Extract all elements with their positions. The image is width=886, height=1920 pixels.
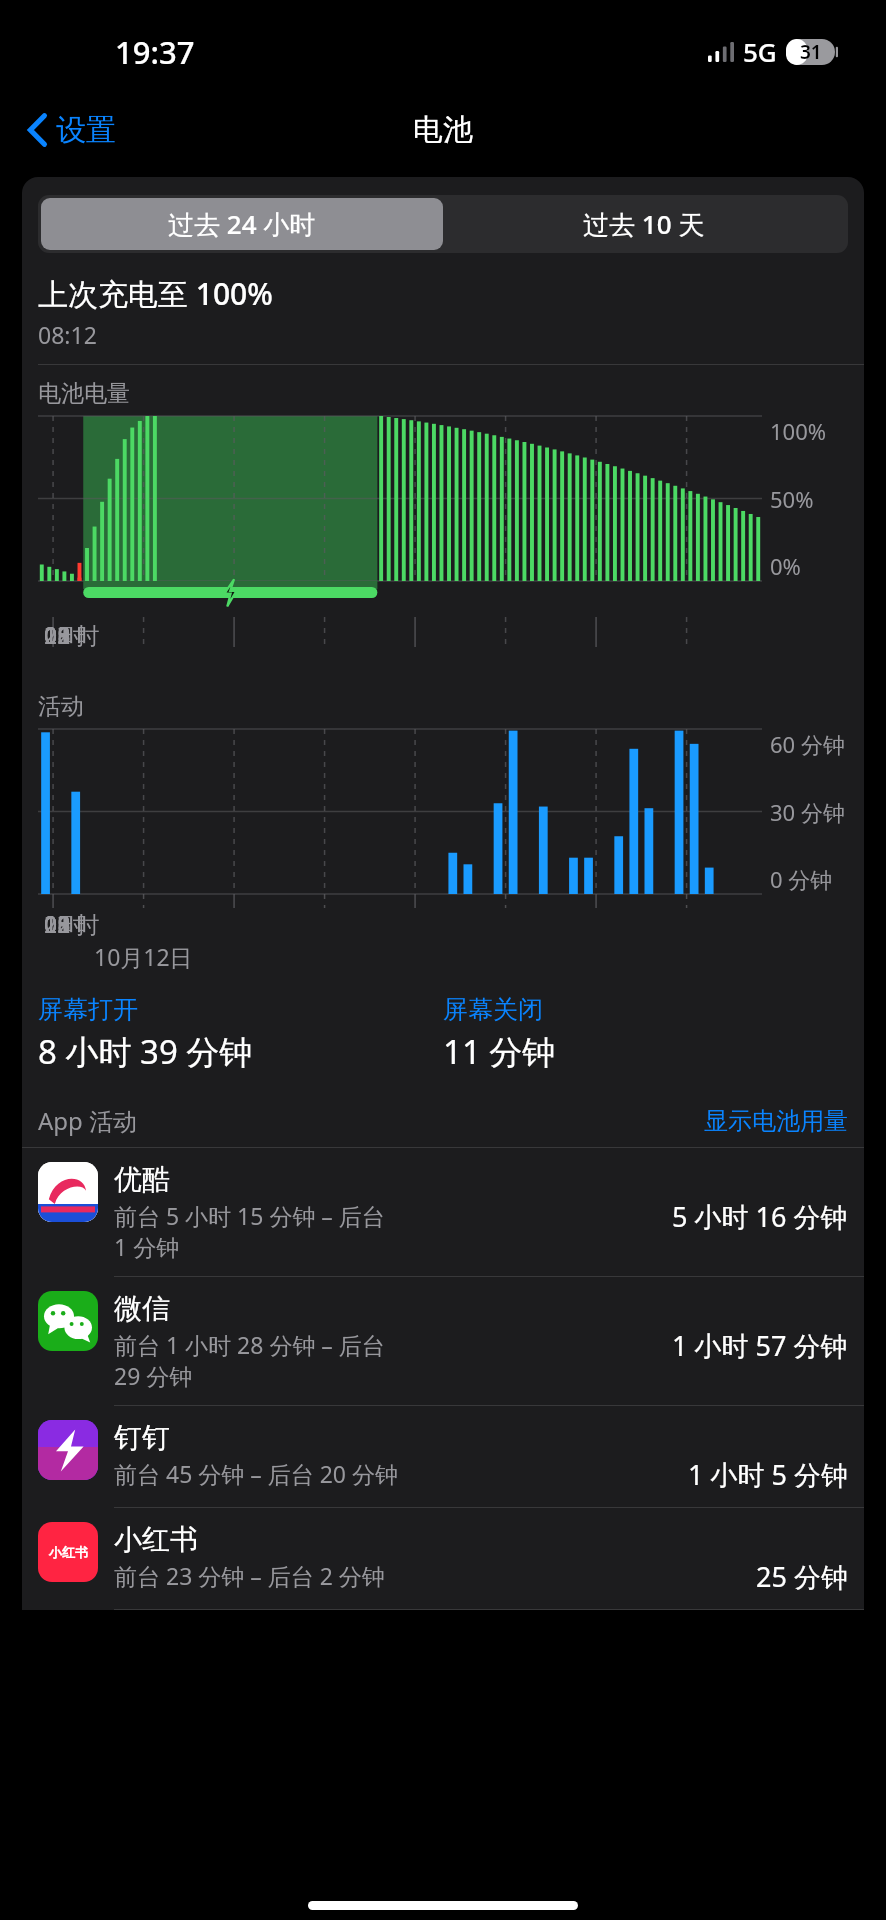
staticText: 06: [44, 908, 71, 939]
staticText: 前台 45 分钟 – 后台 20 分钟: [114, 1458, 399, 1489]
staticText: 电池电量: [38, 379, 130, 408]
staticText: 03: [44, 908, 71, 939]
staticText: 上次充电至 100%: [38, 273, 273, 314]
staticText: 09: [44, 619, 71, 650]
staticText: 100%: [770, 416, 827, 446]
staticText: 30 分钟: [770, 797, 845, 827]
staticText: 1 小时 57 分钟: [672, 1327, 848, 1364]
staticText: 15: [44, 908, 71, 939]
staticText: 前台 1 小时 28 分钟 – 后台 29 分钟: [114, 1329, 385, 1391]
staticText: 21: [44, 908, 71, 939]
staticText: 小红书: [49, 1544, 88, 1560]
staticText: 0 时: [44, 908, 87, 939]
button[interactable]: 过去 10 天: [443, 198, 845, 250]
staticText: 钉钉: [114, 1420, 170, 1455]
button[interactable]: 设置: [22, 105, 122, 155]
staticText: 0 时: [44, 619, 87, 650]
staticText: 09: [44, 908, 71, 939]
staticText: 18: [44, 908, 71, 939]
staticText: 5G: [743, 34, 777, 69]
staticText: 小红书: [114, 1522, 198, 1557]
staticText: 8 小时 39 分钟: [38, 1029, 253, 1074]
staticText: 12 时: [44, 908, 100, 939]
staticText: 优酷: [114, 1162, 170, 1197]
staticText: 10月12日: [94, 941, 193, 972]
staticText: 5 小时 16 分钟: [672, 1198, 848, 1235]
button[interactable]: 优酷: [22, 1148, 864, 1277]
staticText: 0 分钟: [770, 864, 833, 894]
staticText: 08:12: [38, 319, 97, 350]
staticText: 60 分钟: [770, 729, 845, 759]
staticText: 过去 10 天: [583, 206, 705, 242]
staticText: 50%: [770, 484, 814, 514]
button[interactable]: 钉钉: [22, 1406, 864, 1508]
staticText: App 活动: [38, 1104, 138, 1137]
staticText: 微信: [114, 1291, 170, 1326]
staticText: 06: [44, 619, 71, 650]
staticText: 03: [44, 619, 71, 650]
staticText: 18: [44, 619, 71, 650]
staticText: 前台 5 小时 15 分钟 – 后台 1 分钟: [114, 1200, 385, 1262]
staticText: 设置: [56, 111, 116, 149]
staticText: 屏幕打开: [38, 994, 138, 1025]
button[interactable]: 微信: [22, 1277, 864, 1406]
staticText: 过去 24 小时: [168, 206, 316, 242]
staticText: 电池: [413, 111, 473, 149]
staticText: 前台 23 分钟 – 后台 2 分钟: [114, 1560, 385, 1591]
staticText: 21: [44, 619, 71, 650]
button[interactable]: 过去 24 小时: [41, 198, 443, 250]
staticText: 25 分钟: [756, 1558, 848, 1595]
staticText: 1 小时 5 分钟: [688, 1456, 848, 1493]
staticText: 15: [44, 619, 71, 650]
staticText: 19:37: [115, 31, 195, 73]
staticText: 11 分钟: [443, 1029, 556, 1074]
staticText: 显示电池用量: [704, 1106, 848, 1136]
staticText: 屏幕关闭: [443, 994, 543, 1025]
button[interactable]: 小红书: [22, 1508, 864, 1610]
staticText: 31: [800, 39, 822, 65]
staticText: 0%: [770, 551, 801, 581]
staticText: 活动: [38, 692, 84, 721]
staticText: 12 时: [44, 619, 100, 650]
button[interactable]: 显示电池用量: [704, 1106, 848, 1136]
